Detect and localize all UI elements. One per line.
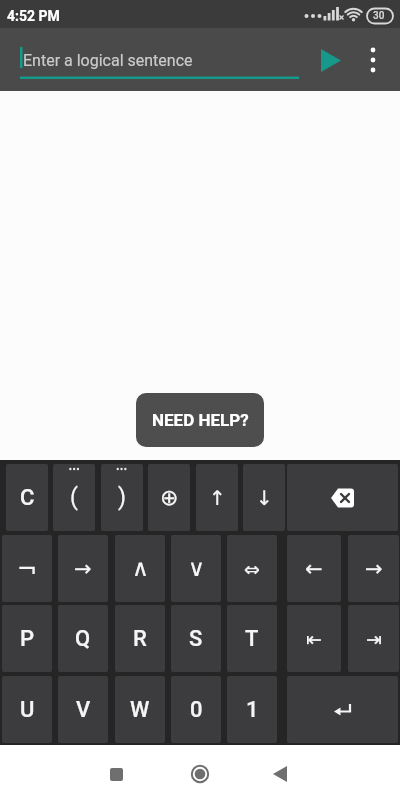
button[interactable]	[266, 760, 294, 788]
staticText: W	[130, 697, 150, 723]
staticText: ¬	[17, 555, 38, 583]
staticText: ↓	[256, 486, 273, 509]
button[interactable]: ∨	[171, 535, 221, 602]
staticText: →	[74, 557, 92, 581]
staticText: ⊕	[160, 485, 179, 511]
staticText: Q	[75, 626, 91, 652]
staticText: C	[20, 485, 35, 511]
staticText: T	[245, 626, 259, 652]
button[interactable]: →	[58, 535, 108, 602]
staticText: ∧	[132, 555, 149, 582]
staticText: (	[70, 484, 78, 511]
button[interactable]: C	[6, 464, 48, 531]
button[interactable]	[102, 760, 130, 788]
staticText: ⇔	[244, 558, 260, 580]
button[interactable]: U	[2, 676, 52, 743]
staticText: V	[76, 697, 91, 723]
staticText: ←	[305, 557, 323, 581]
button[interactable]	[287, 464, 398, 531]
staticText: ↑	[209, 486, 226, 509]
staticText: R	[133, 626, 147, 652]
button[interactable]: P	[2, 605, 52, 672]
staticText: )	[118, 484, 127, 511]
button[interactable]: ⊕	[148, 464, 190, 531]
staticText: 4:52 PM	[7, 8, 60, 24]
staticText: 0	[190, 697, 203, 723]
button[interactable]: ⇤	[287, 605, 341, 672]
button[interactable]: S	[171, 605, 221, 672]
button[interactable]: ⇥	[348, 605, 399, 672]
button[interactable]: R	[115, 605, 165, 672]
button[interactable]: ↓	[243, 464, 285, 531]
button[interactable]: T	[227, 605, 277, 672]
button[interactable]: W	[115, 676, 165, 743]
staticText: Enter a logical sentence	[23, 51, 193, 70]
staticText: 1	[246, 697, 259, 723]
button[interactable]: ¬	[2, 535, 52, 602]
button[interactable]: 0	[171, 676, 221, 743]
button[interactable]: Enter a logical sentence	[18, 38, 302, 84]
button[interactable]	[356, 39, 390, 81]
button[interactable]	[287, 676, 398, 743]
staticText: NEED HELP?	[152, 410, 249, 430]
button[interactable]: 1	[227, 676, 277, 743]
button[interactable]: V	[58, 676, 108, 743]
button[interactable]: ⇔	[227, 535, 277, 602]
staticText: →	[365, 557, 383, 581]
button[interactable]: NEED HELP?	[136, 393, 264, 447]
button[interactable]: →	[348, 535, 399, 602]
staticText: S	[189, 626, 203, 652]
staticText: ⇤	[306, 628, 322, 650]
staticText: P	[20, 626, 35, 652]
button[interactable]: ∧	[115, 535, 165, 602]
button[interactable]: ←	[287, 535, 341, 602]
button[interactable]: )	[101, 464, 143, 531]
staticText: ∨	[188, 555, 205, 582]
button[interactable]: (	[53, 464, 95, 531]
button[interactable]	[186, 760, 214, 788]
staticText: U	[20, 697, 35, 723]
staticText: 30	[373, 10, 385, 22]
staticText: ⇥	[366, 628, 382, 650]
button[interactable]: Q	[58, 605, 108, 672]
button[interactable]	[310, 39, 352, 81]
button[interactable]: ↑	[196, 464, 238, 531]
